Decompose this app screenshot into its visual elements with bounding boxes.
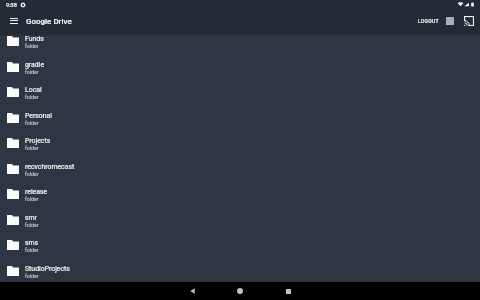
button[interactable]: Funds xyxy=(0,34,480,54)
staticText: Personal xyxy=(25,112,53,120)
staticText: sms xyxy=(25,239,39,247)
staticText: folder xyxy=(25,171,39,177)
staticText: 9:38 xyxy=(6,2,17,8)
button[interactable]: Back xyxy=(182,282,202,300)
button[interactable]: Personal xyxy=(0,105,480,131)
button[interactable]: Projects xyxy=(0,130,480,156)
staticText: smr xyxy=(25,214,37,222)
staticText: StudioProjects xyxy=(25,265,70,273)
button[interactable]: smr xyxy=(0,207,480,233)
staticText: Funds xyxy=(25,35,44,43)
staticText: folder xyxy=(25,145,39,151)
button[interactable]: release xyxy=(0,181,480,207)
staticText: LOGOUT xyxy=(418,18,439,24)
button[interactable]: Home xyxy=(230,282,250,300)
staticText: folder xyxy=(25,247,39,253)
staticText: Google Drive xyxy=(26,17,72,26)
button[interactable]: StudioProjects xyxy=(0,258,480,282)
staticText: folder xyxy=(25,69,39,75)
button[interactable]: LOGOUT xyxy=(415,14,442,28)
button[interactable]: Recent apps xyxy=(278,282,298,300)
button[interactable]: Open navigation drawer xyxy=(4,11,23,30)
staticText: recvchromecast xyxy=(25,163,75,171)
button[interactable]: sms xyxy=(0,232,480,258)
staticText: folder xyxy=(25,120,39,126)
button[interactable]: Local xyxy=(0,79,480,105)
button[interactable]: recvchromecast xyxy=(0,156,480,182)
staticText: Projects xyxy=(25,137,51,145)
staticText: gradle xyxy=(25,61,45,69)
button[interactable]: gradle xyxy=(0,54,480,80)
staticText: folder xyxy=(25,273,39,279)
staticText: release xyxy=(25,188,48,196)
staticText: folder xyxy=(25,196,39,202)
staticText: folder xyxy=(25,222,39,228)
staticText: folder xyxy=(25,43,39,49)
button[interactable]: Cast screen xyxy=(461,13,477,29)
button[interactable]: Switch to grid view xyxy=(442,13,458,29)
staticText: folder xyxy=(25,94,39,100)
staticText: Local xyxy=(25,86,42,94)
